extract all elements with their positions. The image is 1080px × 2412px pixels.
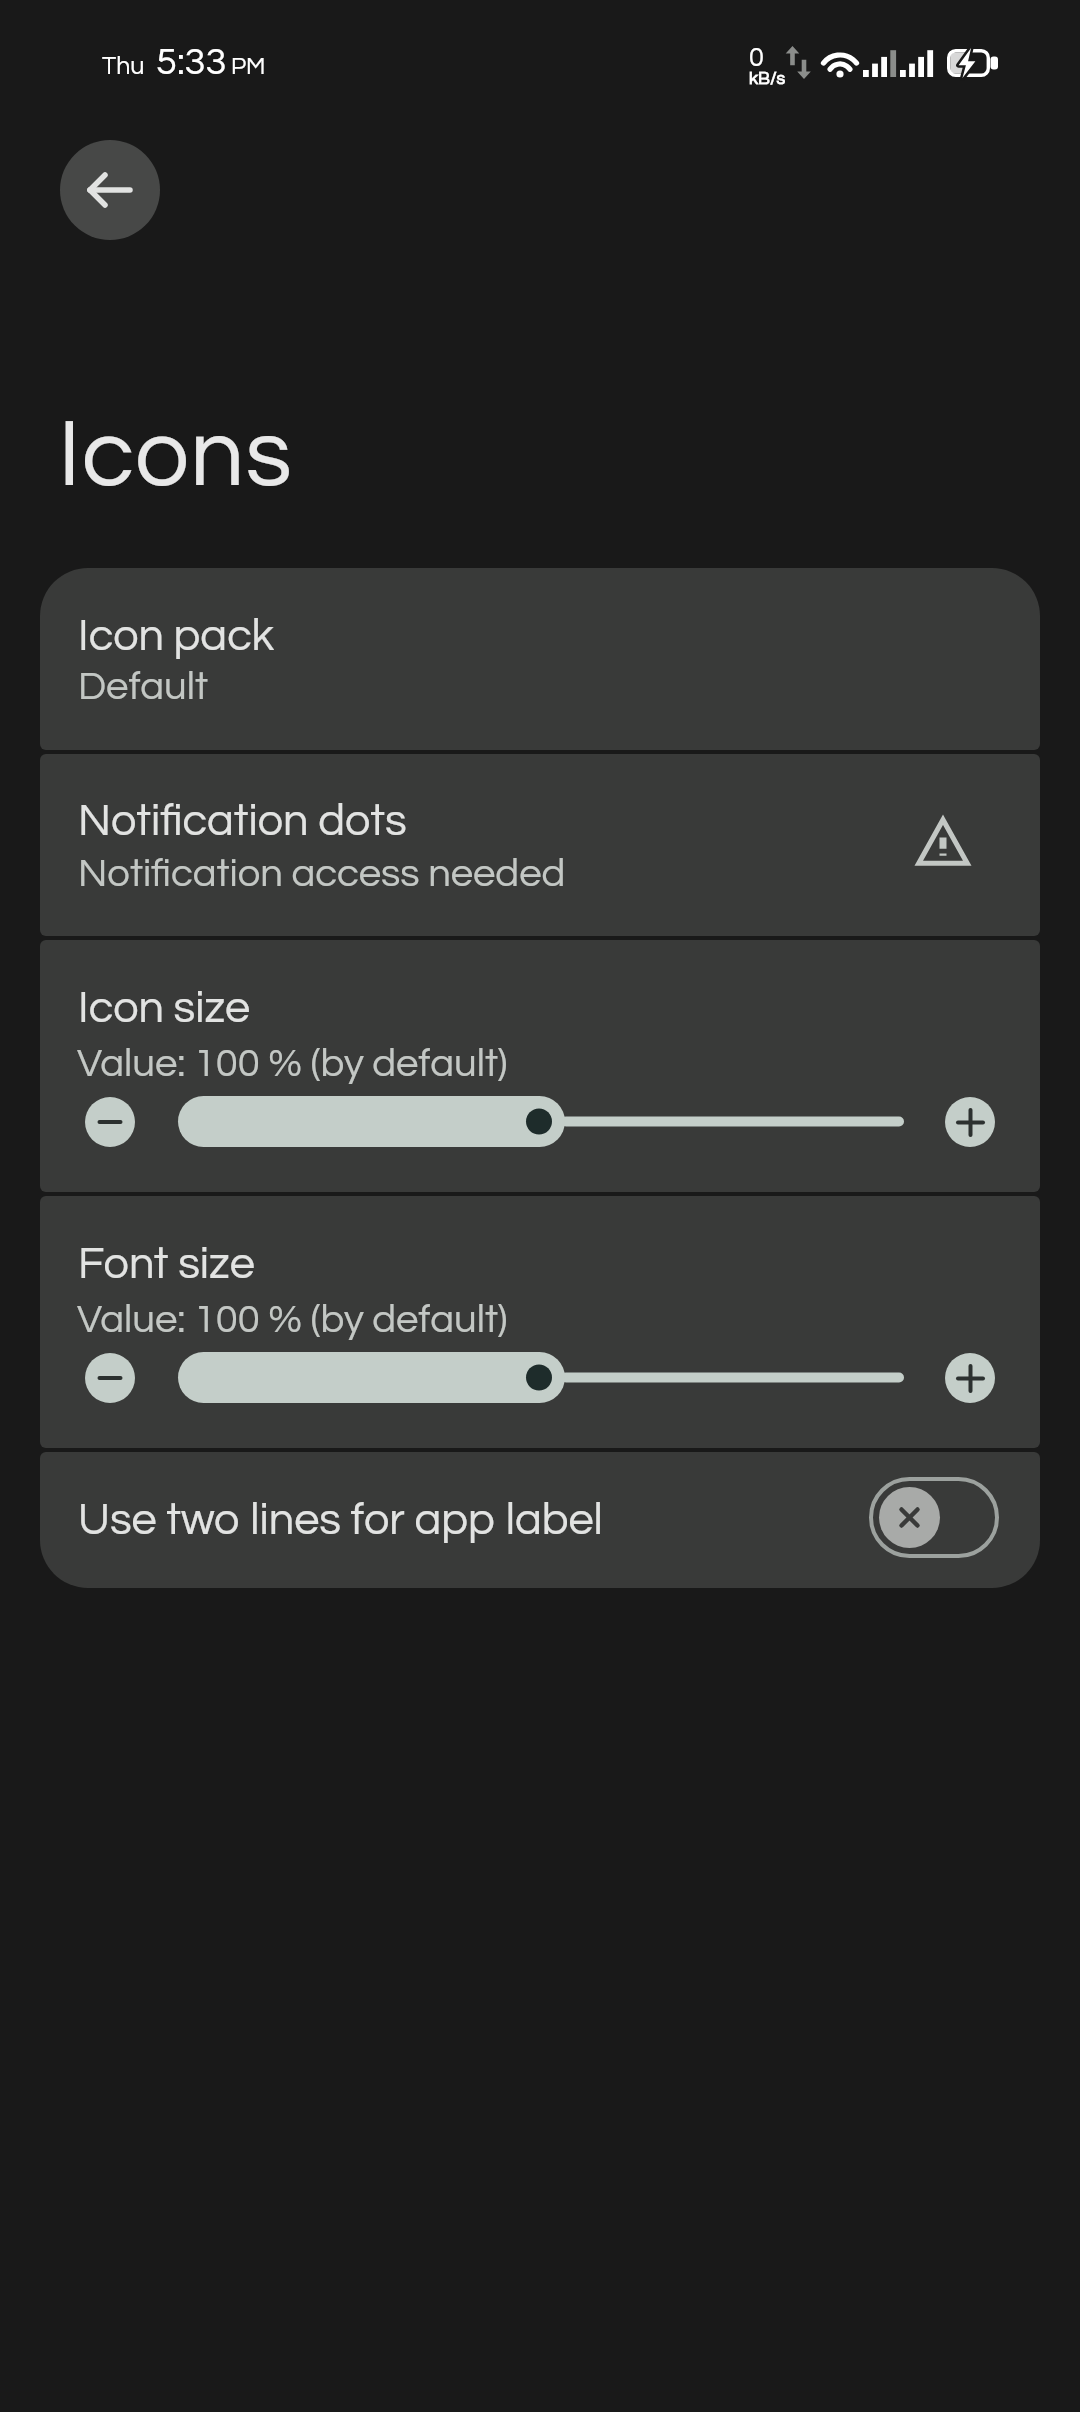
staticText: PM (231, 54, 266, 79)
staticText: Value: 100 % (by default) (77, 1299, 508, 1340)
staticText: 5:33 (156, 43, 227, 82)
button[interactable]: Increase (945, 1097, 995, 1147)
button[interactable]: Icon size (40, 940, 1040, 1192)
other: Warning (916, 817, 970, 866)
staticText: Font size (78, 1241, 255, 1287)
button[interactable]: Icon pack (40, 568, 1040, 750)
staticText: Notification access needed (78, 853, 566, 894)
button[interactable]: Notification dots (40, 754, 1040, 936)
staticText: Icon size (78, 985, 251, 1031)
staticText: Icons (58, 406, 293, 505)
staticText: Default (78, 666, 208, 707)
button[interactable]: Decrease (85, 1353, 135, 1403)
button[interactable]: Use two lines for app label toggle (869, 1477, 999, 1558)
button[interactable] (178, 1096, 904, 1147)
staticText: Value: 100 % (by default) (77, 1043, 508, 1084)
button[interactable]: Back (60, 140, 160, 240)
button[interactable] (178, 1352, 904, 1403)
button[interactable]: Use two lines for app label (40, 1452, 1040, 1588)
button[interactable]: Increase (945, 1353, 995, 1403)
staticText: Use two lines for app label (78, 1497, 603, 1543)
staticText: Notification dots (78, 798, 407, 844)
staticText: 0 (749, 44, 764, 72)
button[interactable]: Font size (40, 1196, 1040, 1448)
staticText: Thu (102, 53, 145, 79)
staticText: Icon pack (78, 613, 275, 659)
staticText: kB/s (749, 69, 786, 88)
button[interactable]: Decrease (85, 1097, 135, 1147)
